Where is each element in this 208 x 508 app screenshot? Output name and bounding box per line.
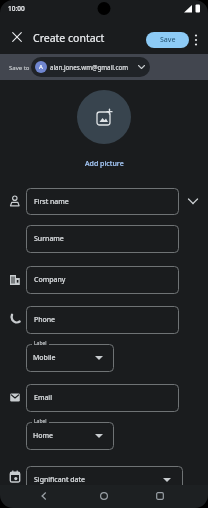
button[interactable]: Home [26,422,114,450]
staticText: Home [33,431,53,441]
staticText: Save [160,35,176,45]
staticText: Company [34,275,66,285]
staticText: Surname [34,234,64,244]
button[interactable]: First name [26,188,179,215]
staticText: Add picture [85,159,124,169]
staticText: Mobile [33,353,56,363]
button[interactable]: Phone [26,306,179,334]
button[interactable] [186,194,200,208]
button[interactable]: Save [146,32,189,48]
staticText: Significant date [34,475,85,485]
staticText: First name [34,197,69,207]
button[interactable]: Email [26,384,179,412]
button[interactable]: Significant date [26,466,183,493]
staticText: Label [34,340,47,347]
staticText: Label [34,418,47,425]
button[interactable] [9,29,25,45]
button[interactable]: Surname [26,225,179,253]
staticText: A [39,63,43,71]
button[interactable]: Add picture [76,157,132,171]
staticText: 10:00 [8,4,25,13]
button[interactable]: Company [26,266,179,294]
button[interactable] [190,32,202,48]
button[interactable] [38,490,50,502]
staticText: Save to [9,64,30,72]
button[interactable]: Mobile [26,344,114,372]
staticText: Email [34,393,52,403]
staticText: Create contact [33,31,105,45]
button[interactable]: A [31,57,150,77]
staticText: alan.jones.wm@gmail.com [50,63,128,71]
staticText: Phone [34,315,56,325]
button[interactable] [154,490,166,502]
button[interactable] [98,490,110,502]
button[interactable] [77,90,131,144]
